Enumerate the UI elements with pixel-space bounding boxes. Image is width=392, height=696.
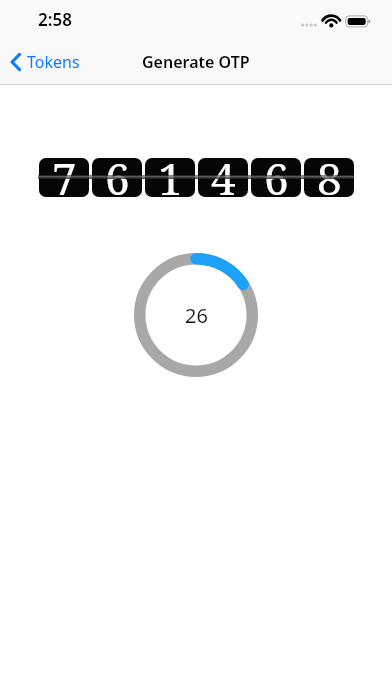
staticText: 6 — [105, 158, 130, 197]
button[interactable]: Tokens — [9, 44, 80, 79]
staticText: 6 — [264, 158, 289, 197]
staticText: 8 — [317, 158, 342, 197]
staticText: 1 — [158, 158, 183, 197]
staticText: Generate OTP — [142, 51, 250, 73]
staticText: Tokens — [27, 51, 80, 73]
staticText: 26 — [185, 302, 208, 329]
staticText: 4 — [211, 158, 236, 197]
staticText: 7 — [52, 158, 77, 197]
staticText: 2:58 — [38, 8, 72, 31]
